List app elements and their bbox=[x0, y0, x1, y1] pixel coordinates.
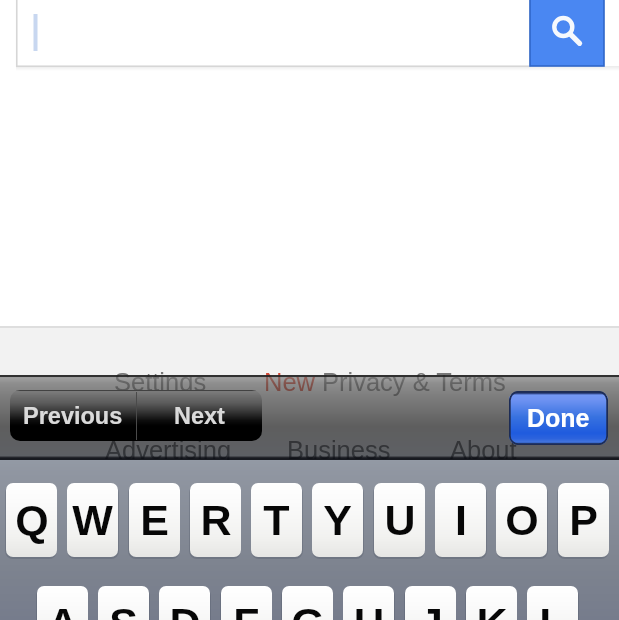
staticText: W bbox=[72, 496, 113, 544]
staticText: About bbox=[450, 436, 517, 464]
staticText: F bbox=[233, 599, 260, 620]
staticText: G bbox=[291, 599, 325, 620]
staticText: H bbox=[353, 599, 385, 620]
staticText: E bbox=[140, 496, 169, 544]
button[interactable]: New bbox=[264, 368, 316, 396]
button[interactable]: G bbox=[282, 586, 333, 620]
staticText: S bbox=[109, 599, 138, 620]
staticText: L bbox=[539, 599, 566, 620]
button[interactable]: Previous bbox=[10, 390, 136, 441]
staticText: New bbox=[264, 368, 316, 396]
button[interactable]: R bbox=[190, 483, 241, 557]
staticText: T bbox=[263, 496, 290, 544]
button[interactable]: Settings bbox=[114, 368, 207, 396]
button[interactable]: About bbox=[450, 436, 517, 464]
staticText: I bbox=[455, 496, 467, 544]
staticText: R bbox=[200, 496, 232, 544]
button[interactable]: Search bbox=[530, 0, 604, 66]
staticText: P bbox=[569, 496, 598, 544]
button[interactable]: Next bbox=[136, 390, 262, 441]
staticText: J bbox=[419, 599, 443, 620]
button[interactable]: A bbox=[37, 586, 88, 620]
button[interactable]: H bbox=[343, 586, 394, 620]
staticText: Settings bbox=[114, 368, 207, 396]
button[interactable]: I bbox=[435, 483, 486, 557]
staticText: Next bbox=[174, 403, 225, 429]
button[interactable]: D bbox=[159, 586, 210, 620]
staticText: Done bbox=[527, 404, 590, 432]
button[interactable]: W bbox=[67, 483, 118, 557]
button[interactable]: P bbox=[558, 483, 609, 557]
staticText: Business bbox=[287, 436, 391, 464]
button[interactable]: J bbox=[405, 586, 456, 620]
button[interactable]: F bbox=[221, 586, 272, 620]
staticText: U bbox=[384, 496, 416, 544]
staticText: A bbox=[47, 599, 79, 620]
staticText: Advertising bbox=[105, 436, 232, 464]
button[interactable]: Privacy & Terms bbox=[322, 368, 506, 396]
staticText: D bbox=[169, 599, 201, 620]
staticText: Privacy & Terms bbox=[322, 368, 506, 396]
button[interactable] bbox=[16, 0, 531, 67]
button[interactable]: T bbox=[251, 483, 302, 557]
button[interactable]: L bbox=[527, 586, 578, 620]
button[interactable]: Y bbox=[312, 483, 363, 557]
staticText: Q bbox=[15, 496, 49, 544]
button[interactable]: O bbox=[496, 483, 547, 557]
staticText: K bbox=[476, 599, 508, 620]
button[interactable]: Advertising bbox=[105, 436, 232, 464]
button[interactable]: E bbox=[129, 483, 180, 557]
button[interactable]: U bbox=[374, 483, 425, 557]
button[interactable]: K bbox=[466, 586, 517, 620]
staticText: Y bbox=[323, 496, 352, 544]
button[interactable]: Q bbox=[6, 483, 57, 557]
staticText: O bbox=[505, 496, 539, 544]
button[interactable]: Done bbox=[509, 391, 608, 445]
button[interactable]: S bbox=[98, 586, 149, 620]
staticText: Previous bbox=[23, 403, 123, 429]
button[interactable]: Business bbox=[287, 436, 391, 464]
